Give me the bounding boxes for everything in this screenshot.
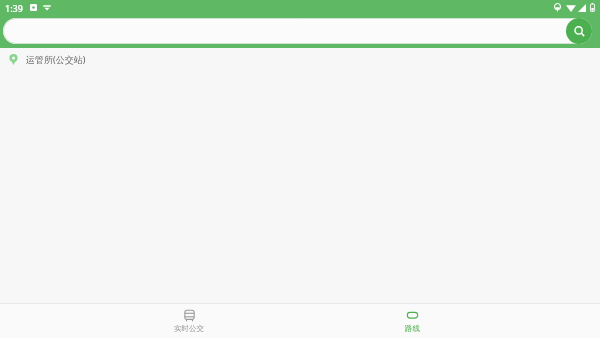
button[interactable]: 实时公交 — [154, 307, 224, 335]
staticText: 1:39 — [5, 2, 23, 14]
staticText: 实时公交 — [174, 324, 204, 333]
button[interactable]: Search — [566, 18, 592, 44]
staticText: 路线 — [405, 324, 420, 333]
button[interactable]: 运管所(公交站) — [0, 48, 600, 70]
button[interactable] — [3, 18, 592, 44]
staticText: 运管所(公交站) — [26, 53, 86, 65]
button[interactable]: 路线 — [377, 307, 447, 335]
